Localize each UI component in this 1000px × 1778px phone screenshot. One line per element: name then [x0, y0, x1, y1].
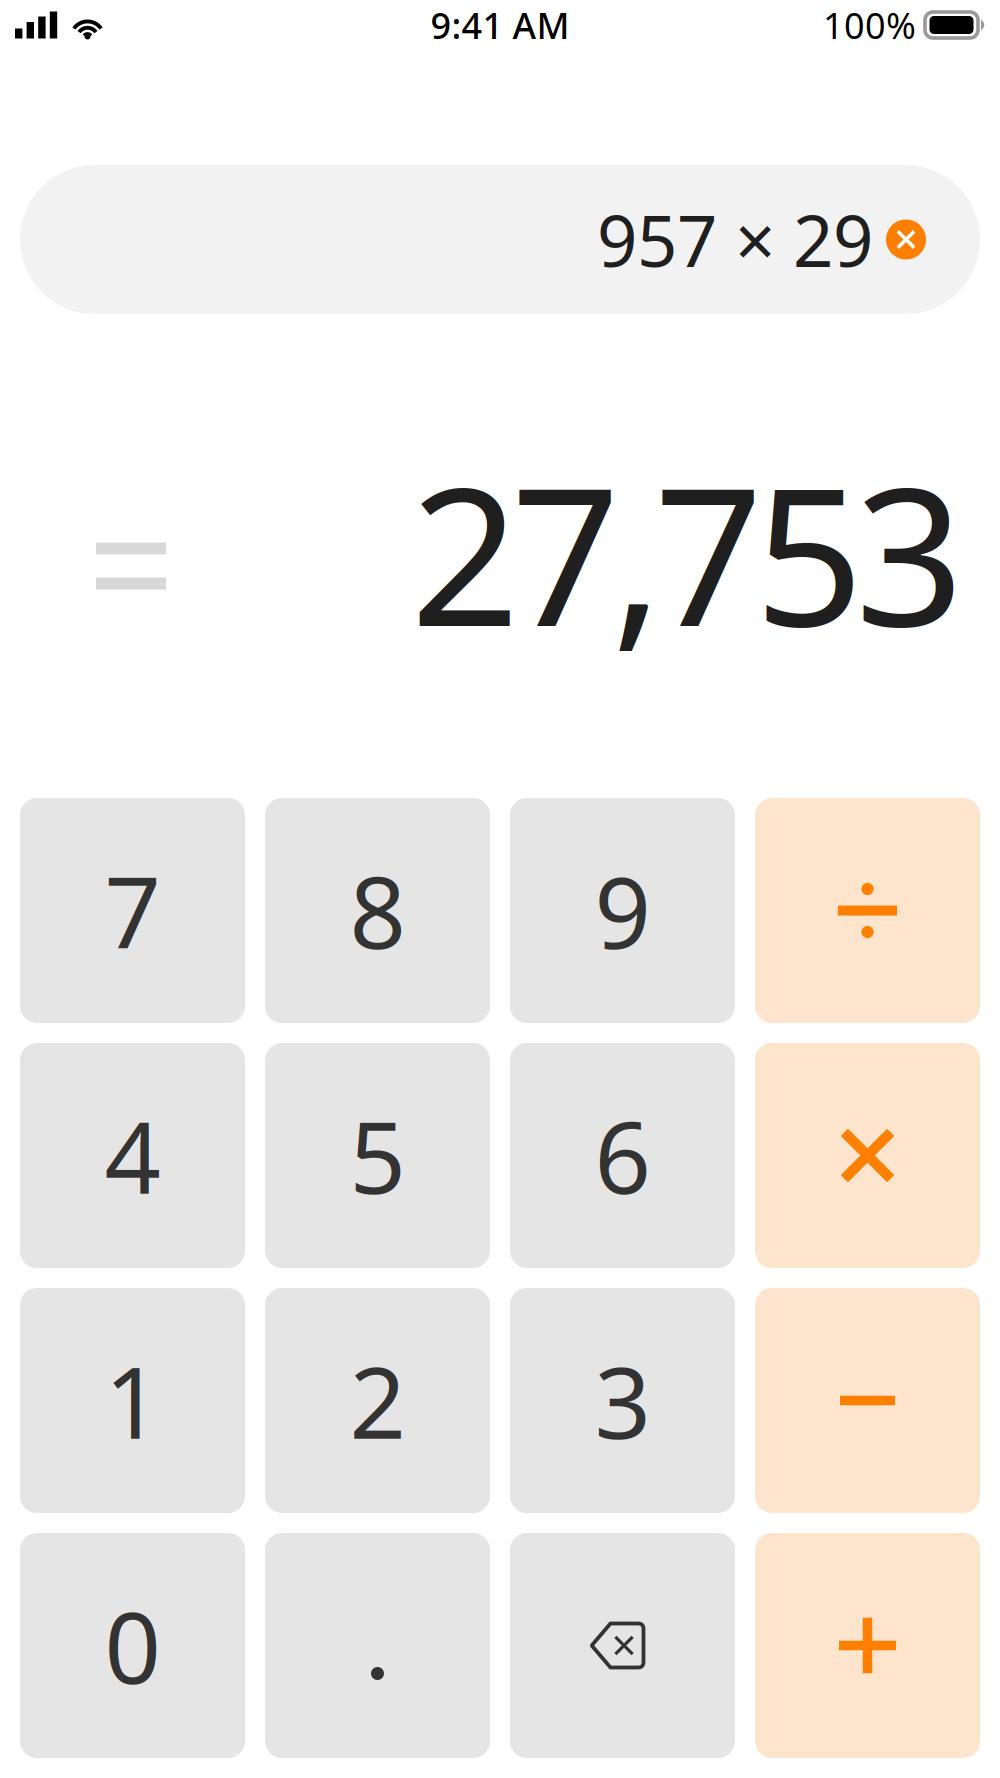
button[interactable]: 6	[510, 1043, 735, 1268]
button[interactable]: 9	[510, 798, 735, 1023]
button[interactable]: Divide	[755, 798, 980, 1023]
staticText: 957 × 29	[597, 193, 873, 286]
button[interactable]: 8	[265, 798, 490, 1023]
button[interactable]: 3	[510, 1288, 735, 1513]
button[interactable]: Delete	[510, 1533, 735, 1758]
staticText: 6	[594, 1090, 650, 1221]
button[interactable]: 5	[265, 1043, 490, 1268]
staticText: 9:41 AM	[430, 1, 569, 49]
button[interactable]: Multiply	[755, 1043, 980, 1268]
staticText: 9	[594, 845, 650, 976]
staticText: 5	[349, 1090, 405, 1221]
button[interactable]: 1	[20, 1288, 245, 1513]
staticText: 0	[104, 1580, 160, 1711]
button[interactable]: 0	[20, 1533, 245, 1758]
button[interactable]: Clear	[886, 219, 926, 259]
button[interactable]: 2	[265, 1288, 490, 1513]
staticText: 100%	[823, 1, 916, 49]
staticText: 27,753	[410, 425, 964, 679]
staticText: 3	[594, 1335, 650, 1466]
button[interactable]: Decimal point	[265, 1533, 490, 1758]
staticText: 8	[349, 845, 405, 976]
button[interactable]: Subtract	[755, 1288, 980, 1513]
button[interactable]: Add	[755, 1533, 980, 1758]
button[interactable]: 4	[20, 1043, 245, 1268]
staticText: 1	[104, 1335, 160, 1466]
staticText: 7	[104, 845, 160, 976]
button[interactable]: 7	[20, 798, 245, 1023]
staticText: 2	[349, 1335, 405, 1466]
staticText: 4	[104, 1090, 160, 1221]
